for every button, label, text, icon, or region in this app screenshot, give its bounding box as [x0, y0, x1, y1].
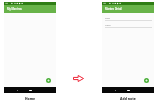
button[interactable]: My Mantras [4, 5, 56, 13]
staticText: Mantra Detail [105, 7, 122, 11]
staticText: Add note [102, 96, 154, 101]
button[interactable]: Note [105, 23, 152, 28]
staticText: Home [4, 96, 56, 101]
staticText: Note [105, 23, 111, 26]
staticText: Title [105, 16, 110, 19]
button[interactable]: Save mantra [144, 78, 149, 83]
button[interactable]: Mantra Detail [102, 5, 154, 13]
staticText: My Mantras [7, 7, 22, 11]
button[interactable]: Title [105, 16, 152, 21]
button[interactable]: Add mantra [46, 78, 51, 83]
